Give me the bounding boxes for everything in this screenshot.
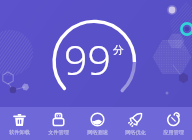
button[interactable]: File manager (39, 107, 78, 140)
staticText: 网络优化 (125, 129, 146, 136)
staticText: 分 (113, 43, 124, 57)
staticText: 99 (64, 31, 111, 87)
button[interactable]: App manager (154, 107, 192, 140)
staticText: 文件管理 (48, 129, 69, 136)
staticText: 应用管理 (163, 129, 184, 136)
button[interactable]: Uninstall apps (0, 107, 39, 140)
staticText: 软件卸载 (9, 129, 30, 136)
staticText: 网络测速 (87, 129, 108, 136)
button[interactable]: Speed test (78, 107, 116, 140)
button[interactable]: Boost (116, 107, 154, 140)
